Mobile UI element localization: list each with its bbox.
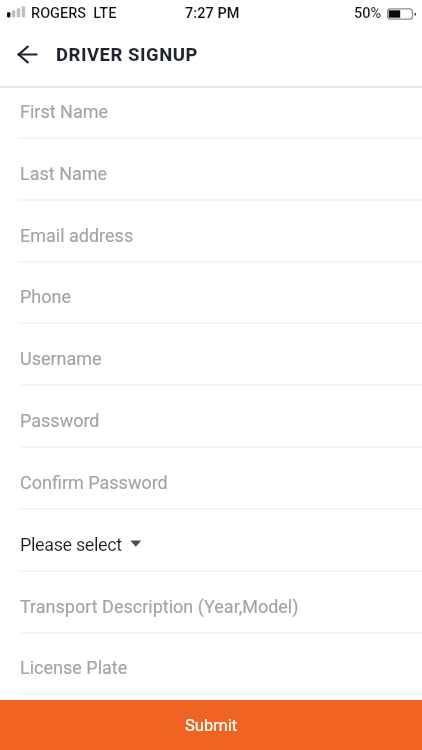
staticText: License Plate: [20, 657, 128, 678]
button[interactable]: Transport Description (Year,Model): [0, 572, 422, 634]
staticText: Last Name: [20, 163, 108, 184]
staticText: Phone: [20, 286, 72, 307]
button[interactable]: Confirm Password: [0, 448, 422, 510]
staticText: Submit: [185, 716, 238, 735]
button[interactable]: Username: [0, 324, 422, 386]
button[interactable]: Back: [9, 40, 45, 76]
staticText: Email address: [20, 225, 134, 246]
staticText: DRIVER SIGNUP: [56, 44, 198, 66]
staticText: Username: [20, 348, 102, 369]
button[interactable]: First Name: [0, 88, 422, 139]
button[interactable]: Password: [0, 386, 422, 448]
staticText: Please select: [20, 534, 122, 555]
button[interactable]: License Plate: [0, 634, 422, 695]
staticText: Password: [20, 410, 100, 431]
staticText: 50%: [354, 5, 382, 22]
staticText: 7:27 PM: [185, 5, 240, 22]
button[interactable]: Last Name: [0, 139, 422, 201]
button[interactable]: Phone: [0, 263, 422, 324]
button[interactable]: Please select: [0, 510, 422, 572]
staticText: First Name: [20, 101, 109, 122]
staticText: Confirm Password: [20, 472, 168, 493]
staticText: Transport Description (Year,Model): [20, 596, 299, 617]
staticText: ROGERS LTE: [31, 5, 117, 22]
button[interactable]: Email address: [0, 201, 422, 263]
button[interactable]: Submit: [0, 700, 422, 750]
